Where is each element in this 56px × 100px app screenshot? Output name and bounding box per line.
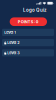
button[interactable]: Level 3 [2,49,54,56]
staticText: POINTS: 0 [18,19,39,24]
staticText: Level 2 [7,40,19,45]
button[interactable]: Level 2 [2,39,54,46]
staticText: Level 1 [4,30,16,35]
staticText: Level 3 [7,50,19,55]
staticText: Logo Quiz [23,7,47,13]
button[interactable]: Level 1 [2,29,54,36]
